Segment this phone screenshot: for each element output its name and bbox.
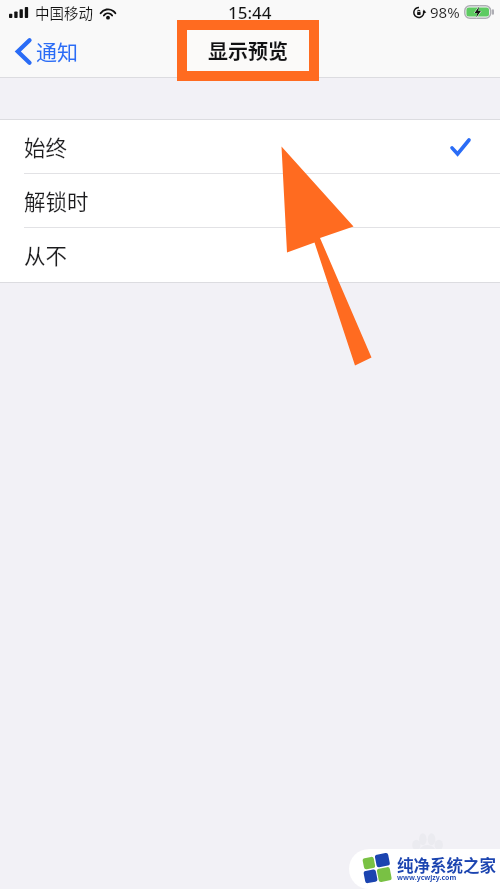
- staticText: 始终: [24, 131, 68, 162]
- staticText: 从不: [24, 239, 68, 270]
- staticText: 显示预览: [210, 37, 290, 66]
- button[interactable]: 始终: [0, 120, 500, 174]
- staticText: 98%: [430, 2, 460, 22]
- staticText: 通知: [36, 36, 78, 66]
- staticText: 15:44: [228, 1, 272, 24]
- button[interactable]: Back: [0, 30, 92, 72]
- staticText: 解锁时: [24, 185, 89, 216]
- button[interactable]: 从不: [0, 228, 500, 282]
- staticText: 显示预览: [208, 36, 288, 65]
- staticText: 纯净系统之家: [397, 853, 496, 877]
- staticText: www.ycwjzy.com: [397, 873, 457, 883]
- button[interactable]: 解锁时: [0, 174, 500, 228]
- staticText: 中国移动: [35, 2, 93, 23]
- other: Back: [16, 38, 31, 65]
